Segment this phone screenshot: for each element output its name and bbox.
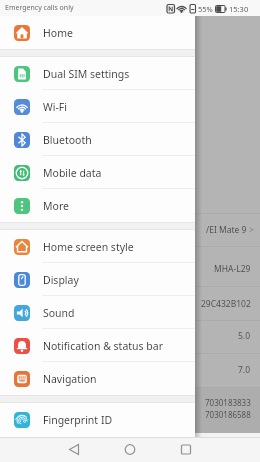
staticText: Wi-Fi <box>43 100 68 114</box>
staticText: Home <box>43 26 73 40</box>
button[interactable]: Fingerprint ID <box>0 403 195 436</box>
staticText: Emergency calls only <box>5 3 74 13</box>
button[interactable]: Dual SIM settings <box>0 57 195 90</box>
button[interactable]: Notification & status bar <box>0 329 195 362</box>
button[interactable]: Mobile data <box>0 156 195 189</box>
staticText: More <box>43 199 69 213</box>
staticText: 7030186588 <box>205 409 251 420</box>
staticText: Bluetooth <box>43 133 92 147</box>
button[interactable]: Wi-Fi <box>0 90 195 123</box>
staticText: Navigation <box>43 372 97 386</box>
staticText: 7030183833 <box>205 397 251 408</box>
button[interactable]: More <box>0 189 195 222</box>
staticText: Dual SIM settings <box>43 67 130 81</box>
staticText: Fingerprint ID <box>43 413 113 427</box>
button[interactable] <box>86 437 173 462</box>
button[interactable] <box>0 437 86 462</box>
button[interactable]: Navigation <box>0 362 195 395</box>
button[interactable]: Bluetooth <box>0 123 195 156</box>
staticText: Display <box>43 273 79 287</box>
button[interactable]: Home screen style <box>0 230 195 263</box>
staticText: 7.0 <box>238 364 251 376</box>
staticText: 15:30 <box>229 4 249 14</box>
staticText: 29C432B102 <box>201 298 251 310</box>
button[interactable]: Sound <box>0 296 195 329</box>
staticText: 5.0 <box>238 330 251 342</box>
button[interactable]: Display <box>0 263 195 296</box>
staticText: 55% <box>198 4 213 14</box>
staticText: MHA-L29 <box>214 263 251 275</box>
staticText: Notification & status bar <box>43 339 164 353</box>
staticText: /EI Mate 9 <box>206 224 249 236</box>
staticText: Mobile data <box>43 166 102 180</box>
staticText: Sound <box>43 306 75 320</box>
staticText: > <box>249 224 254 236</box>
button[interactable] <box>173 437 260 462</box>
staticText: Home screen style <box>43 240 134 254</box>
button[interactable]: Home <box>0 16 195 49</box>
